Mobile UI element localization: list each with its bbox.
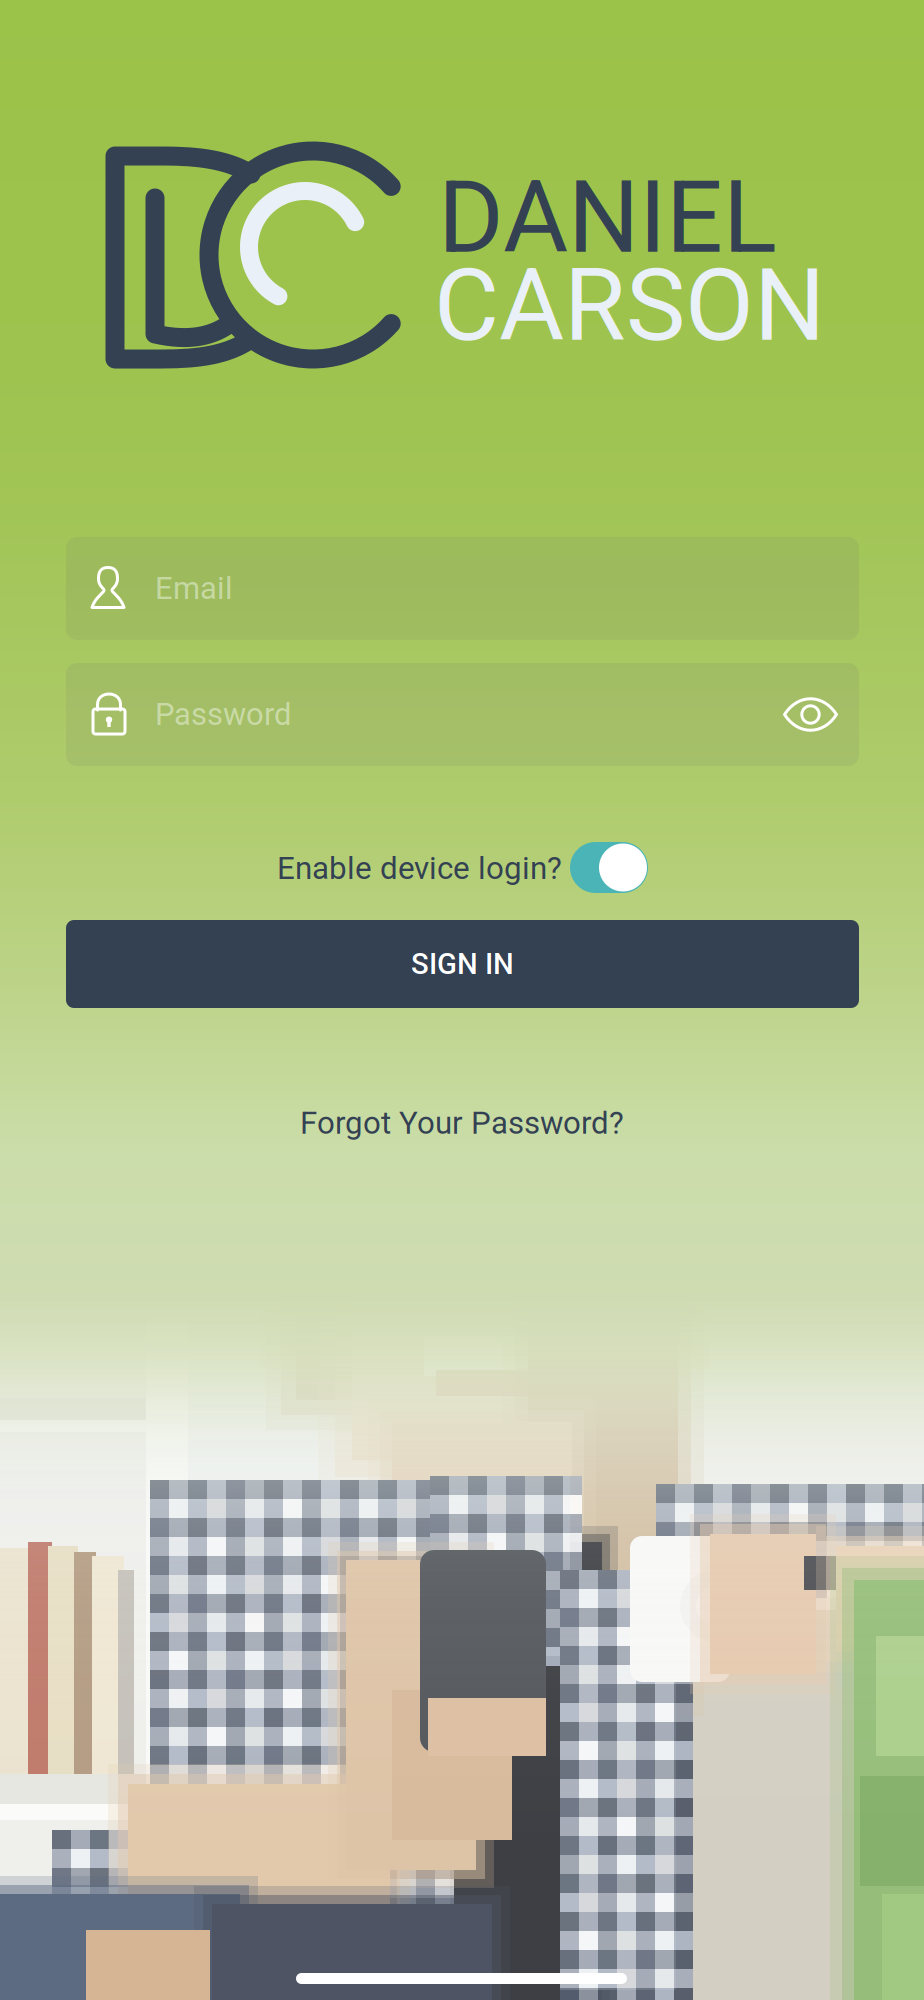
staticText: Password [155, 696, 291, 733]
button[interactable]: Forgot Your Password? [252, 1096, 672, 1150]
button[interactable]: Email [66, 537, 859, 640]
staticText: Forgot Your Password? [300, 1105, 624, 1141]
button[interactable]: Password [66, 663, 859, 766]
button[interactable]: SIGN IN [66, 920, 859, 1008]
staticText: Email [155, 570, 233, 607]
staticText: CARSON [434, 247, 825, 364]
staticText: Enable device login? [277, 850, 562, 887]
staticText: SIGN IN [411, 947, 514, 981]
button[interactable]: Enable device login [570, 842, 648, 893]
staticText: DANIEL [438, 159, 777, 276]
